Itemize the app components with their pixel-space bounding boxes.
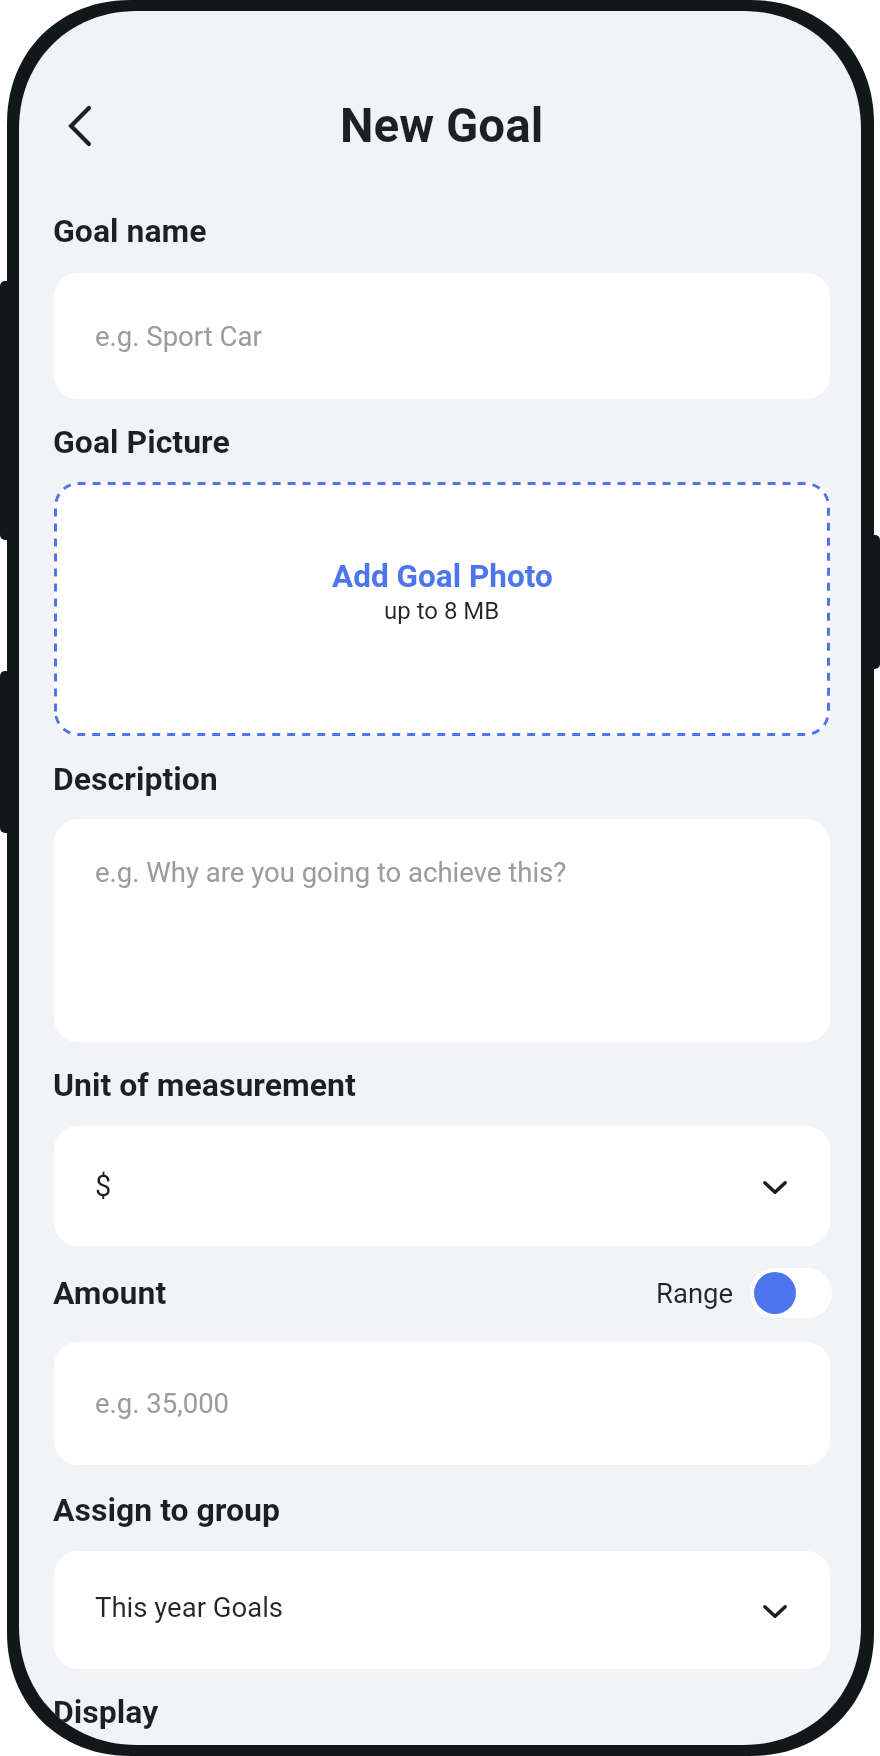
button[interactable]: Range	[648, 1262, 842, 1324]
button[interactable]: Add Goal Photo	[54, 482, 830, 736]
staticText: up to 8 MB	[384, 597, 500, 625]
staticText: Display	[53, 1693, 159, 1731]
button[interactable]: Back	[52, 90, 108, 162]
button[interactable]: $	[54, 1126, 830, 1246]
staticText: Add Goal Photo	[332, 558, 553, 595]
staticText: Assign to group	[53, 1491, 280, 1529]
staticText: Amount	[53, 1274, 167, 1312]
staticText: Unit of measurement	[53, 1066, 356, 1104]
staticText: e.g. Sport Car	[95, 320, 262, 352]
staticText: Goal Picture	[53, 423, 230, 461]
staticText: $	[95, 1169, 112, 1203]
staticText: e.g. Why are you going to achieve this?	[95, 856, 567, 888]
button[interactable]: e.g. 35,000	[54, 1342, 830, 1465]
staticText: Description	[53, 760, 218, 798]
staticText: e.g. 35,000	[95, 1387, 230, 1419]
button[interactable]: e.g. Sport Car	[54, 273, 830, 399]
staticText: Goal name	[53, 212, 207, 250]
staticText: New Goal	[340, 98, 544, 154]
button[interactable]: e.g. Why are you going to achieve this?	[54, 819, 830, 1042]
button[interactable]: This year Goals	[54, 1551, 830, 1669]
staticText: This year Goals	[95, 1591, 284, 1623]
staticText: Range	[656, 1277, 734, 1309]
